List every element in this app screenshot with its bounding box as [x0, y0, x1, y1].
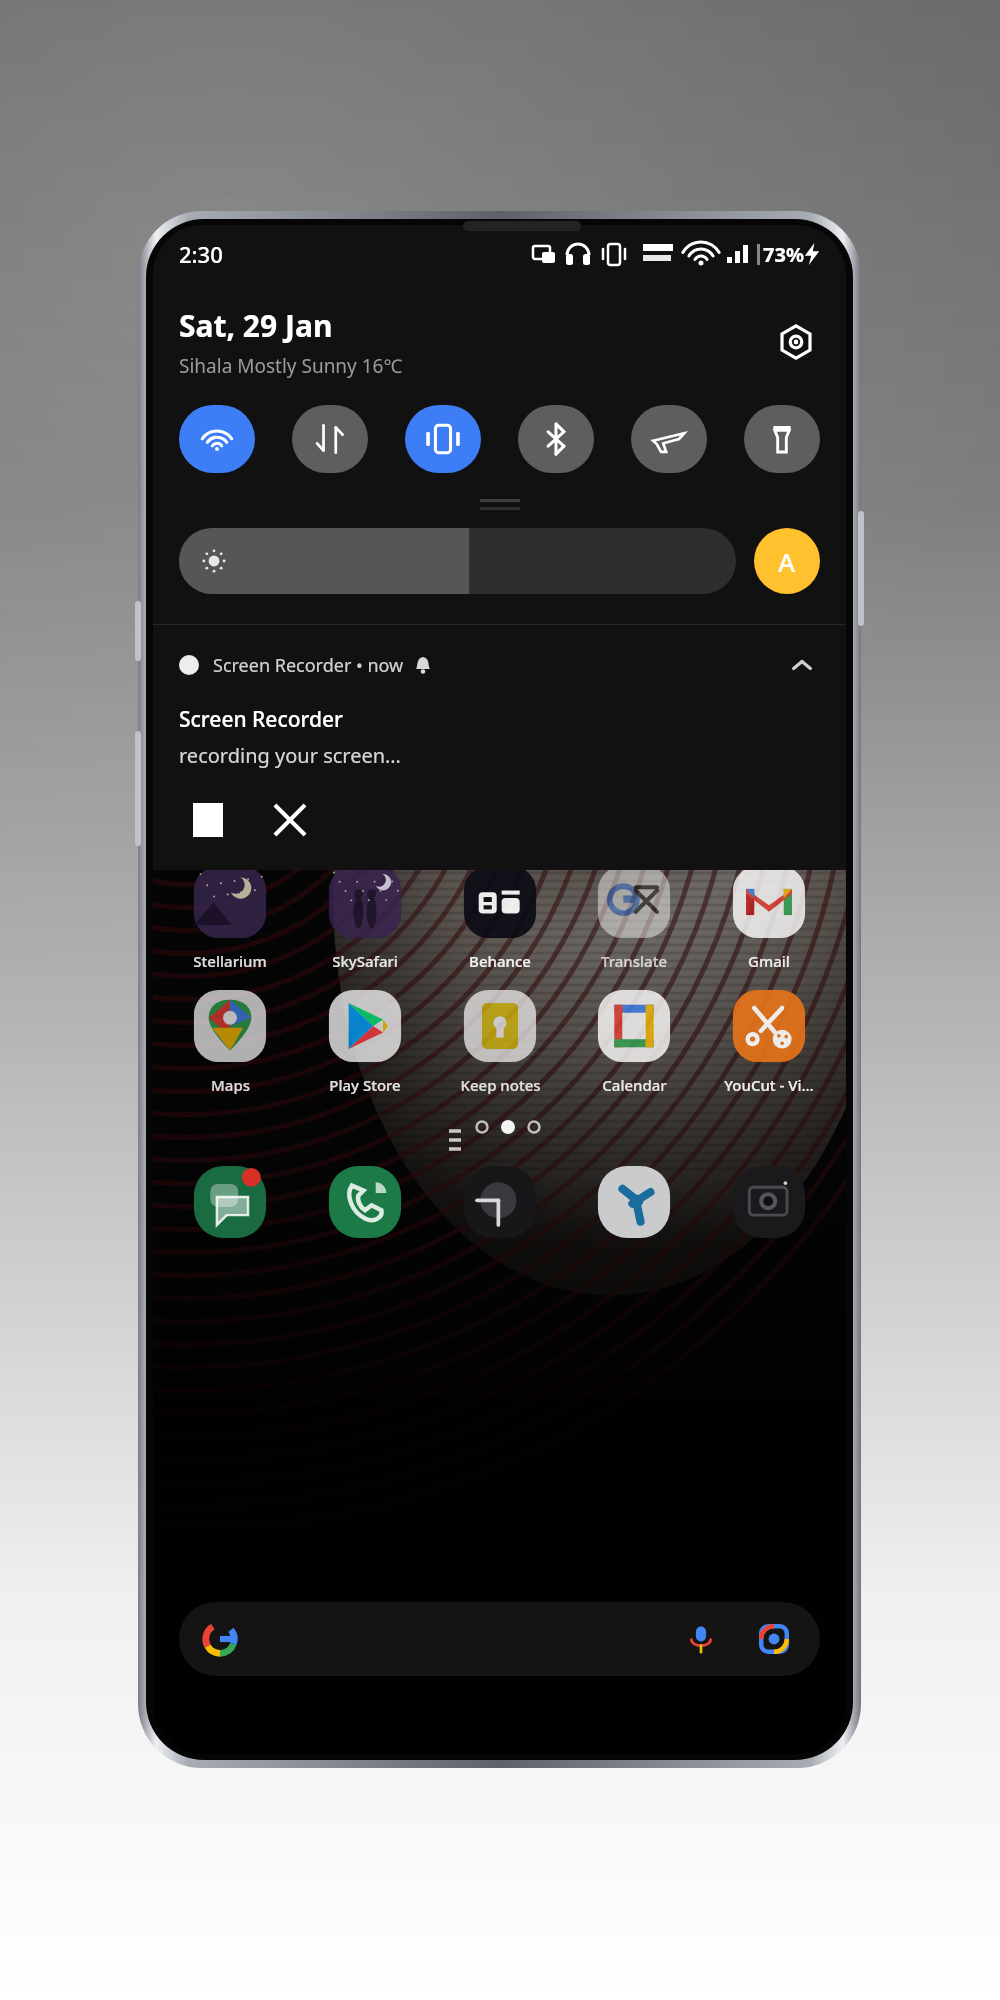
staticText: Keep notes: [460, 1075, 541, 1095]
staticText: Screen Recorder • now: [213, 653, 404, 678]
staticText: YouCut - Vi…: [724, 1075, 814, 1095]
button[interactable]: Screen Recorder • now: [153, 647, 846, 849]
button[interactable]: Behance: [441, 861, 559, 971]
staticText: A: [778, 544, 796, 579]
button[interactable]: Stellarium: [171, 861, 289, 971]
staticText: 73%: [763, 241, 804, 268]
button[interactable]: Stop recording: [179, 791, 237, 849]
button[interactable]: Collapse: [784, 647, 820, 683]
staticText: Sihala Mostly Sunny 16℃: [179, 353, 403, 379]
button[interactable]: Play Store: [306, 985, 424, 1095]
staticText: Play Store: [329, 1075, 401, 1095]
button[interactable]: Vibrate: [405, 405, 481, 473]
button[interactable]: Wi-Fi: [179, 405, 255, 473]
button[interactable]: Camera: [710, 1161, 828, 1243]
button[interactable]: Pinterest: [306, 737, 424, 847]
button[interactable]: Mobile data: [292, 405, 368, 473]
button[interactable]: Dismiss: [261, 791, 319, 849]
staticText: Screen Recorder: [179, 705, 343, 734]
button[interactable]: Translate: [575, 861, 693, 971]
staticText: Gmail: [748, 951, 790, 971]
staticText: Sat, 29 Jan: [179, 305, 333, 346]
button[interactable]: Flashlight: [744, 405, 820, 473]
button[interactable]: Settings: [772, 318, 820, 366]
button[interactable]: Keep notes: [441, 985, 559, 1095]
staticText: 2:30: [179, 239, 223, 269]
button[interactable]: Clock: [441, 1161, 559, 1243]
button[interactable]: Brightness: [179, 528, 736, 594]
button[interactable]: Phone: [306, 1161, 424, 1243]
staticText: SkySafari: [332, 951, 398, 971]
staticText: Translate: [601, 951, 667, 971]
button[interactable]: Calendar: [575, 985, 693, 1095]
button[interactable]: Maps: [171, 985, 289, 1095]
staticText: Stellarium: [193, 951, 267, 971]
button[interactable]: WEBTOON: [171, 737, 289, 847]
button[interactable]: Messages: [171, 1161, 289, 1243]
staticText: Maps: [211, 1075, 250, 1095]
button[interactable]: Auto brightness: [754, 528, 820, 594]
button[interactable]: Gmail: [710, 861, 828, 971]
button[interactable]: Airplane mode: [631, 405, 707, 473]
button[interactable]: YouCut - Vi…: [710, 985, 828, 1095]
button[interactable]: Bluetooth: [518, 405, 594, 473]
staticText: WEBTOON: [192, 827, 268, 847]
staticText: recording your screen…: [179, 742, 401, 769]
staticText: Calendar: [602, 1075, 667, 1095]
button[interactable]: SkySafari: [306, 861, 424, 971]
button[interactable]: Telenor: [575, 1161, 693, 1243]
button[interactable]: Search: [179, 1602, 820, 1676]
staticText: Behance: [469, 951, 531, 971]
